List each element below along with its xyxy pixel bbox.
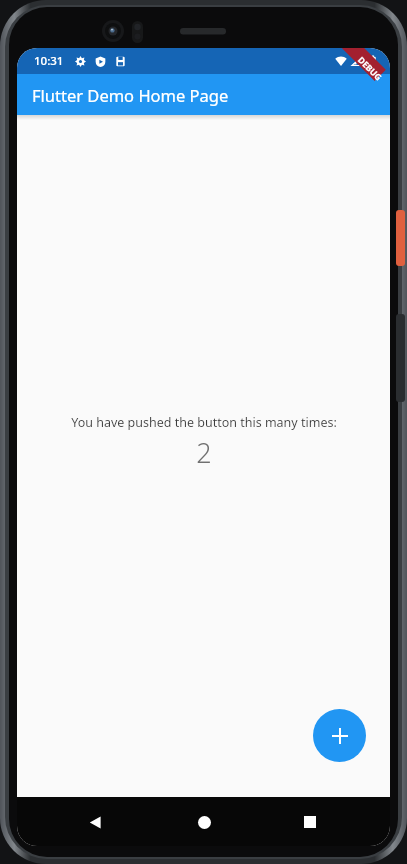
button[interactable]: Home bbox=[181, 799, 227, 845]
button[interactable]: Back bbox=[72, 799, 118, 845]
staticText: Flutter Demo Home Page bbox=[32, 84, 229, 106]
staticText: DEBUG bbox=[355, 54, 385, 84]
button[interactable]: Recent apps bbox=[287, 799, 333, 845]
staticText: You have pushed the button this many tim… bbox=[71, 414, 337, 431]
staticText: 2 bbox=[196, 434, 212, 471]
button[interactable]: Increment bbox=[313, 709, 366, 762]
staticText: 10:31 bbox=[34, 53, 64, 69]
